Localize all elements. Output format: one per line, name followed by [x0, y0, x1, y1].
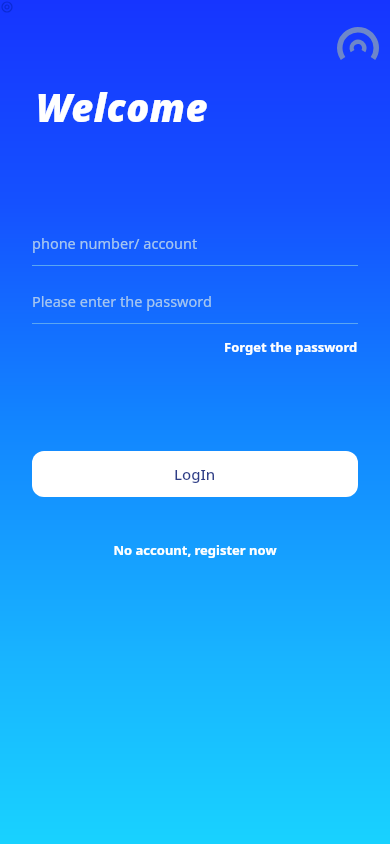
staticText: No account, register now: [113, 541, 277, 559]
staticText: phone number/ account: [32, 233, 198, 253]
button[interactable]: Please enter the password: [32, 285, 358, 324]
button[interactable]: Forget the password: [224, 335, 358, 359]
button[interactable]: LogIn: [32, 451, 358, 497]
staticText: Forget the password: [224, 338, 358, 356]
staticText: Welcome: [36, 81, 209, 133]
staticText: LogIn: [174, 464, 216, 484]
staticText: Please enter the password: [32, 291, 212, 311]
button[interactable]: phone number/ account: [32, 227, 358, 266]
button[interactable]: No account, register now: [105, 537, 285, 563]
button[interactable]: Loading: [337, 27, 379, 69]
